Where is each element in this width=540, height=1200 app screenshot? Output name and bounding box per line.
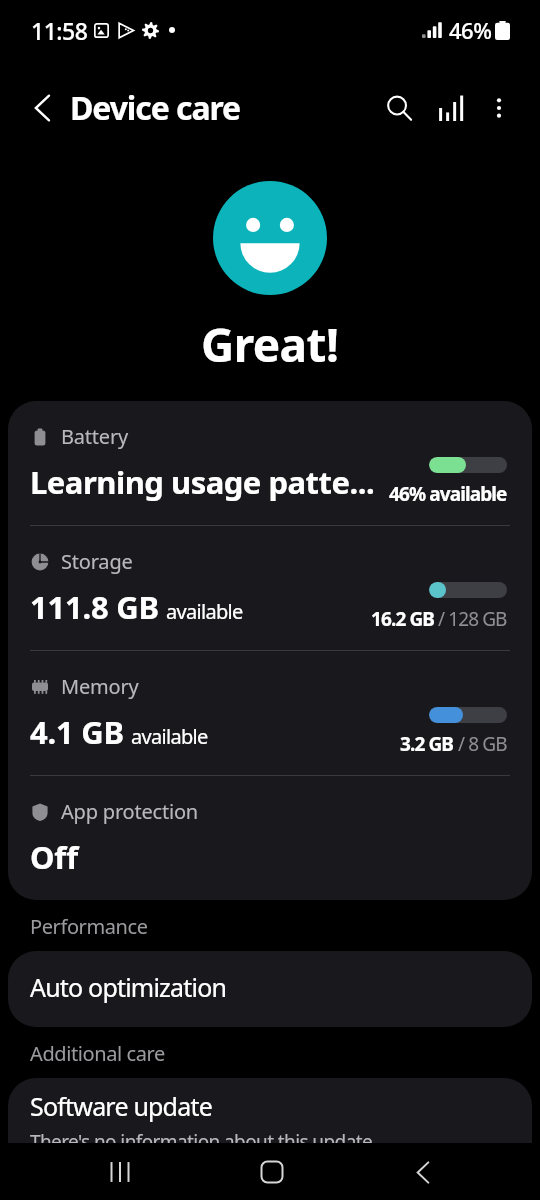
staticText: available [131,723,208,750]
button[interactable]: App protection [8,776,532,900]
button[interactable]: Storage [8,526,532,650]
staticText: available [166,598,243,625]
staticText: / 128 GB [434,606,507,632]
button[interactable]: Search [377,86,421,130]
staticText: App protection [61,798,198,825]
staticText: / 8 GB [454,731,507,757]
staticText: 46% available [389,481,507,507]
staticText: Great! [201,313,339,376]
staticText: Performance [30,913,148,940]
staticText: Storage [61,548,133,575]
staticText: Additional care [30,1040,165,1067]
staticText: There's no information about this update… [30,1129,377,1155]
staticText: Off [30,836,78,878]
staticText: 11:58 [31,15,88,46]
button[interactable]: Battery [8,401,532,525]
button[interactable]: Memory [8,651,532,775]
button[interactable]: Home [248,1148,296,1196]
staticText: 16.2 GB [371,606,434,632]
staticText: Auto optimization [30,970,227,1004]
button[interactable]: Recent apps [96,1148,144,1196]
staticText: 4.1 GB [30,711,124,753]
staticText: Device care [70,86,241,130]
staticText: Memory [61,673,139,700]
button[interactable]: Back [399,1148,447,1196]
button[interactable]: Software update [8,1078,532,1200]
button[interactable]: Navigate up [22,88,62,128]
staticText: 111.8 GB [30,586,159,628]
staticText: Software update [30,1089,212,1123]
staticText: 3.2 GB [400,731,454,757]
button[interactable]: Usage statistics [427,86,471,130]
staticText: Battery [61,423,128,450]
button[interactable]: More options [477,86,521,130]
staticText: 46% [449,15,492,45]
button[interactable]: Auto optimization [8,951,532,1027]
staticText: Learning usage patte... [30,461,375,503]
